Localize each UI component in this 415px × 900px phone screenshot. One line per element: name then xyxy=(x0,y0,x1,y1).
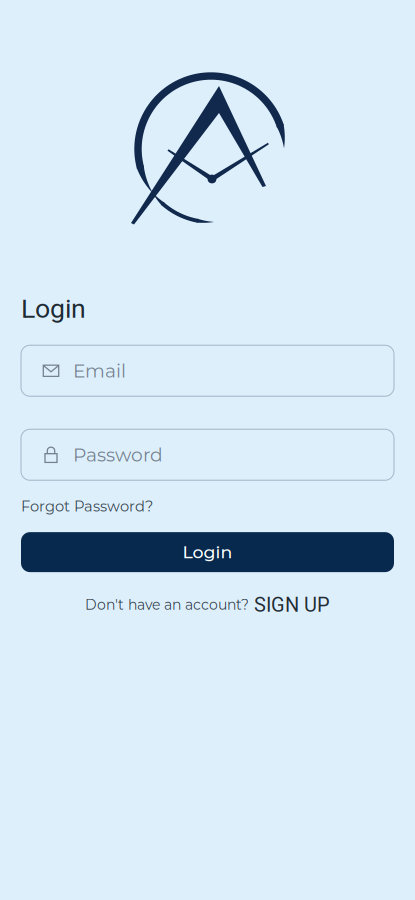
button[interactable]: SIGN UP xyxy=(254,593,330,616)
staticText: Forgot Password? xyxy=(21,497,153,515)
staticText: Password xyxy=(73,443,163,466)
staticText: Don't have an account? xyxy=(85,596,249,613)
staticText: Email xyxy=(73,359,126,382)
button[interactable]: Forgot Password? xyxy=(21,497,153,515)
staticText: Login xyxy=(182,542,232,563)
button[interactable]: Login xyxy=(21,532,394,572)
staticText: Login xyxy=(21,293,86,324)
staticText: SIGN UP xyxy=(254,593,330,616)
